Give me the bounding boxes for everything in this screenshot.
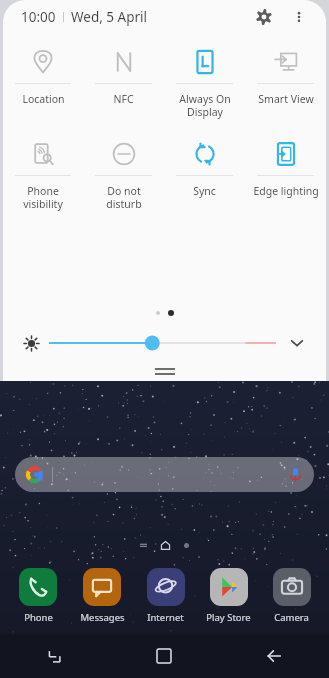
button[interactable]: Brightness [19,331,43,355]
button[interactable] [49,331,276,355]
button[interactable]: Recents [0,634,109,678]
staticText: Edge lighting [253,184,319,198]
button[interactable]: Phone [6,568,70,624]
staticText: NFC [113,92,134,106]
button[interactable]: Back [219,634,329,678]
button[interactable]: Do not disturb [83,132,164,220]
staticText: Camera [274,611,309,624]
button[interactable]: Sync [164,132,245,220]
staticText: Smart View [258,92,314,106]
button[interactable]: More options [286,4,312,30]
staticText: 10:00 [21,8,56,26]
staticText: Phone visibility [23,184,63,211]
button[interactable] [15,457,314,492]
staticText: Location [22,92,65,106]
staticText: Always On Display [179,92,231,119]
button[interactable]: Messages [70,568,134,624]
button[interactable]: Home [109,634,219,678]
staticText: Phone [24,611,53,624]
staticText: Sync [193,184,216,198]
button[interactable]: Edge lighting [245,132,326,220]
button[interactable]: Location [3,40,83,128]
button[interactable]: Smart View [245,40,326,128]
button[interactable]: Play Store [197,568,260,624]
staticText: Messages [80,611,125,624]
staticText: Internet [147,611,184,624]
staticText: Do not disturb [106,184,142,211]
button[interactable]: Settings [250,3,278,31]
button[interactable]: Phone visibility [3,132,83,220]
staticText: Play Store [206,611,251,624]
button[interactable]: Always On Display [164,40,245,128]
button[interactable]: Camera [260,568,323,624]
staticText: Wed, 5 April [71,8,148,26]
button[interactable]: Expand brightness settings [284,330,310,356]
button[interactable]: NFC [83,40,164,128]
button[interactable]: Internet [134,568,197,624]
